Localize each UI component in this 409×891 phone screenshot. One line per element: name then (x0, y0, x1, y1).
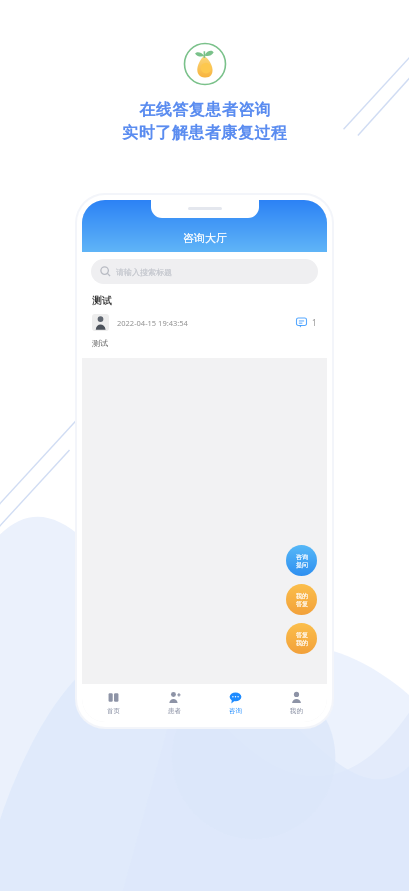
staticText: 答复 (296, 600, 308, 608)
staticText: 请输入搜索标题 (116, 267, 172, 277)
staticText: 患者 (168, 707, 181, 715)
staticText: 我的 (296, 639, 308, 647)
staticText: 提问 (296, 561, 308, 569)
staticText: 我的 (290, 707, 303, 715)
staticText: 我的 (296, 592, 308, 600)
button[interactable]: 测试 (82, 291, 327, 358)
button[interactable]: 患者 (144, 684, 205, 722)
staticText: 1 (312, 317, 317, 328)
staticText: 咨询 (229, 707, 242, 715)
button[interactable]: 首页 (82, 684, 144, 722)
button[interactable]: 咨询 (205, 684, 266, 722)
staticText: 咨询 (296, 553, 308, 561)
button[interactable]: 我的 (286, 584, 317, 615)
staticText: 首页 (107, 707, 120, 715)
other: Comments (296, 317, 307, 328)
button[interactable]: Search (91, 259, 318, 284)
staticText: 测试 (92, 294, 112, 307)
staticText: 在线答复患者咨询 (139, 100, 271, 120)
other: Search (100, 266, 111, 277)
staticText: 实时了解患者康复过程 (122, 123, 287, 143)
button[interactable]: 咨询 (286, 545, 317, 576)
button[interactable]: 我的 (266, 684, 327, 722)
staticText: 2022-04-15 19:43:54 (117, 318, 188, 328)
staticText: 测试 (92, 338, 108, 348)
button[interactable]: 答复 (286, 623, 317, 654)
staticText: 答复 (296, 631, 308, 639)
staticText: 咨询大厅 (183, 231, 227, 245)
